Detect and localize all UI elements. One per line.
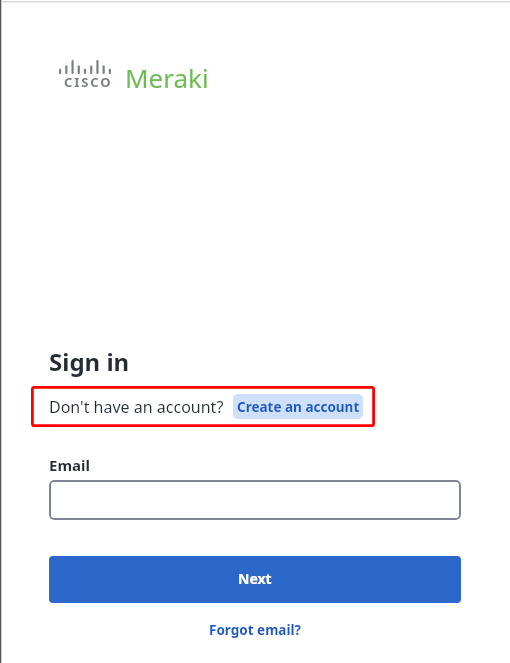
staticText: Next (238, 569, 272, 588)
staticText: Meraki (125, 60, 209, 95)
other: Cisco logo (59, 60, 111, 74)
staticText: Email (49, 455, 90, 475)
staticText: Sign in (49, 345, 130, 378)
button[interactable]: Forgot email? (209, 621, 301, 639)
staticText: Create an account (237, 398, 360, 416)
button[interactable]: Next (49, 556, 461, 603)
staticText: CISCO (64, 73, 113, 91)
button[interactable]: Create an account (233, 394, 363, 419)
button[interactable]: Email input field (49, 480, 461, 520)
staticText: Don't have an account? (49, 396, 224, 418)
staticText: Forgot email? (209, 621, 301, 639)
